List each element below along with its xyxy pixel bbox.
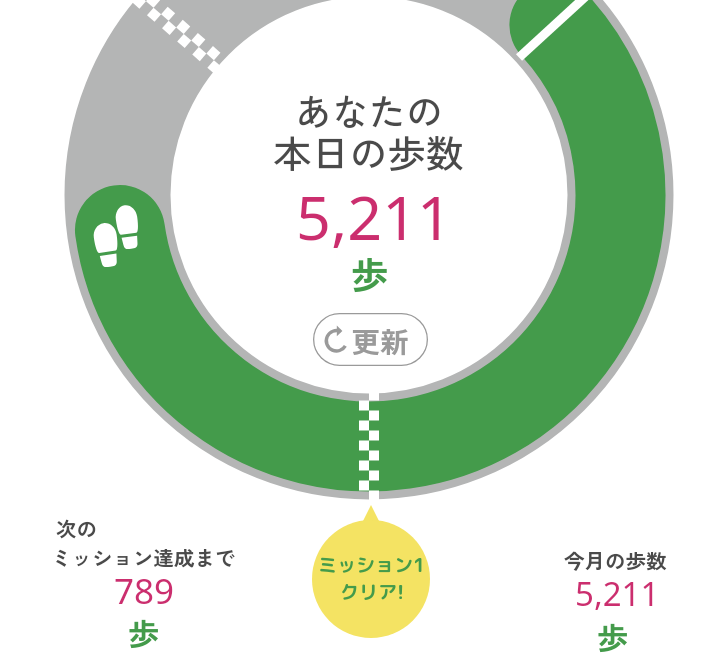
button[interactable]: 更新 [313, 313, 428, 366]
staticText: 歩 [128, 610, 159, 655]
staticText: 5,211 [296, 175, 452, 258]
staticText: あなたの [295, 83, 443, 137]
staticText: ミッション達成まで [51, 542, 236, 572]
staticText: 今月の歩数 [564, 545, 667, 575]
staticText: ミッション1 [318, 552, 426, 579]
staticText: 789 [114, 567, 175, 615]
staticText: 次の [56, 513, 97, 543]
staticText: 本日の歩数 [273, 124, 464, 179]
button[interactable]: ミッション1クリア [311, 503, 431, 639]
staticText: 歩 [597, 614, 628, 659]
staticText: クリア! [340, 579, 405, 606]
staticText: 5,211 [575, 571, 660, 616]
staticText: 歩 [351, 246, 388, 300]
staticText: 更新 [351, 319, 410, 361]
